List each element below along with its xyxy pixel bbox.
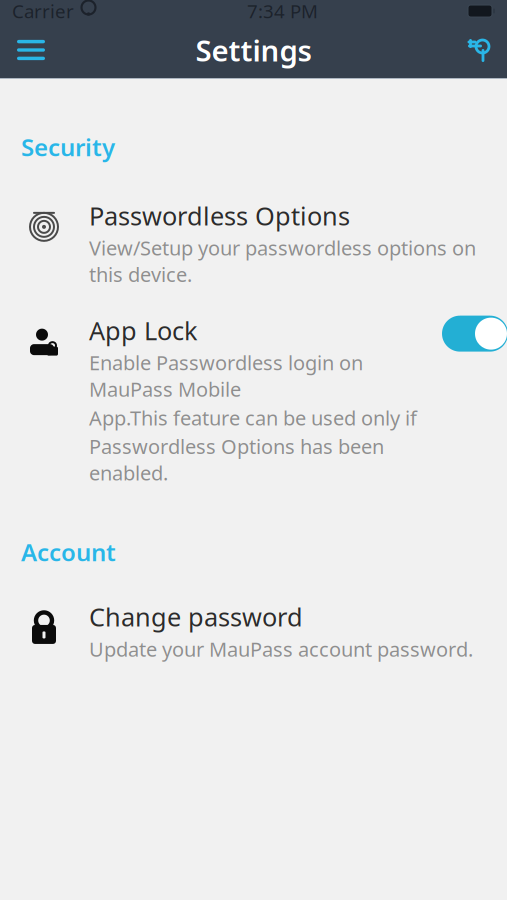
button[interactable]: Passwordless Options	[0, 193, 507, 294]
button[interactable]: Back	[449, 26, 503, 74]
button[interactable]: App Lock	[0, 308, 507, 492]
staticText: Passwordless Options has been enabled.	[89, 433, 384, 486]
staticText: Enable Passwordless login on MauPass Mob…	[89, 349, 363, 402]
staticText: Account	[21, 536, 116, 568]
staticText: Settings	[195, 30, 311, 69]
button[interactable]: Change password	[0, 594, 507, 668]
staticText: App.This feature can be used only if	[89, 404, 417, 431]
button[interactable]: Menu	[4, 26, 58, 74]
staticText: View/Setup your passwordless options on …	[89, 234, 476, 288]
staticText: Security	[21, 131, 115, 163]
staticText: Passwordless Options	[89, 199, 350, 232]
staticText: Carrier	[12, 0, 74, 23]
staticText: 7:34 PM	[247, 0, 318, 23]
staticText: Change password	[89, 600, 303, 633]
staticText: Update your MauPass account password.	[89, 636, 473, 662]
staticText: App Lock	[89, 314, 198, 347]
